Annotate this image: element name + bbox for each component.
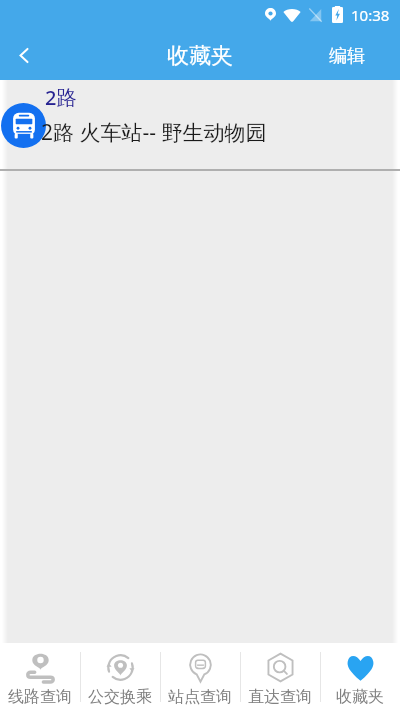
button[interactable]: 站点查询 [160, 643, 240, 710]
staticText: 线路查询 [8, 687, 72, 707]
staticText: 公交换乘 [88, 687, 152, 707]
button[interactable]: Back [0, 31, 48, 79]
staticText: 10:38 [351, 5, 390, 25]
staticText: 2路 火车站-- 野生动物园 [41, 118, 267, 147]
staticText: 收藏夹 [336, 687, 384, 707]
button[interactable]: 编辑 [311, 43, 400, 76]
button[interactable]: 2路 [0, 80, 400, 171]
staticText: 2路 [45, 84, 77, 111]
staticText: 编辑 [329, 45, 365, 68]
button[interactable]: 收藏夹 [320, 643, 400, 710]
staticText: 站点查询 [168, 687, 232, 707]
staticText: 收藏夹 [167, 42, 233, 70]
button[interactable]: 公交换乘 [80, 643, 160, 710]
button[interactable]: 线路查询 [0, 643, 80, 710]
staticText: 直达查询 [248, 687, 312, 707]
button[interactable]: 直达查询 [240, 643, 320, 710]
